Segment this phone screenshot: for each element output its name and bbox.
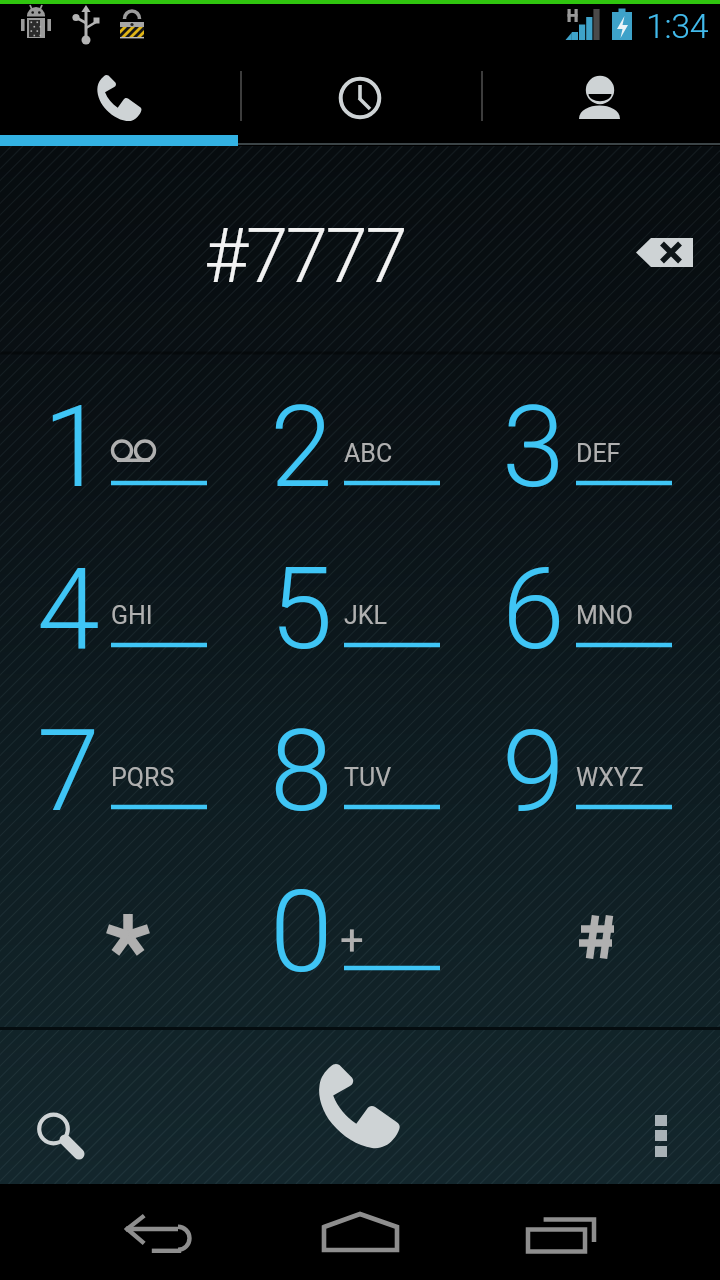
button[interactable]: Search (12, 1087, 94, 1169)
staticText: + (340, 916, 364, 965)
staticText: #7777 (204, 211, 406, 300)
staticText: TUV (344, 763, 392, 792)
staticText: WXYZ (576, 763, 644, 792)
button[interactable]: Contacts (480, 50, 720, 146)
button[interactable] (0, 355, 240, 523)
staticText: PQRS (111, 763, 175, 792)
button[interactable] (0, 523, 240, 691)
button[interactable] (0, 859, 240, 1027)
button[interactable] (0, 691, 240, 859)
staticText: GHI (111, 601, 153, 630)
staticText: 3 (502, 381, 565, 513)
button[interactable] (480, 859, 720, 1027)
button[interactable]: Backspace (616, 212, 710, 296)
staticText: JKL (344, 601, 387, 630)
button[interactable]: Call (305, 1045, 415, 1155)
staticText: 8 (270, 705, 333, 837)
staticText: DEF (576, 439, 621, 468)
button[interactable] (240, 523, 480, 691)
button[interactable] (240, 355, 480, 523)
button[interactable] (480, 523, 720, 691)
staticText: 7 (37, 705, 100, 837)
staticText: 6 (502, 543, 565, 675)
button[interactable]: More options (620, 1087, 702, 1169)
button[interactable]: Back (108, 1202, 202, 1262)
button[interactable] (480, 691, 720, 859)
button[interactable] (480, 355, 720, 523)
staticText: 9 (502, 705, 565, 837)
button[interactable]: Dialpad (0, 50, 240, 146)
button[interactable] (240, 691, 480, 859)
staticText: ABC (344, 439, 393, 468)
staticText: 5 (270, 543, 333, 675)
staticText: 1 (43, 381, 106, 513)
button[interactable]: Recents (513, 1202, 607, 1262)
staticText: 1:34 (646, 6, 709, 46)
staticText: 2 (270, 381, 333, 513)
button[interactable]: Call log (240, 50, 480, 146)
staticText: 4 (37, 543, 100, 675)
button[interactable]: Home (313, 1202, 407, 1262)
staticText: 0 (270, 866, 333, 998)
button[interactable] (240, 859, 480, 1027)
staticText: MNO (576, 601, 633, 630)
